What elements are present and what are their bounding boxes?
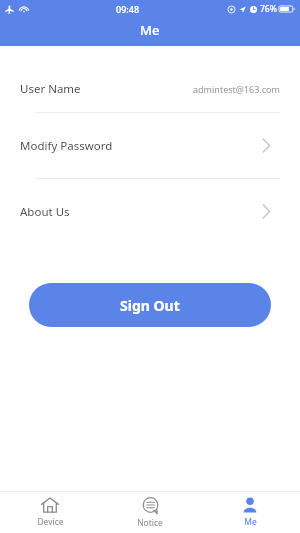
button[interactable]: Sign Out xyxy=(29,283,271,327)
staticText: Notice xyxy=(137,517,163,529)
staticText: Device xyxy=(37,516,64,528)
staticText: User Name xyxy=(20,81,81,97)
button[interactable]: Notice xyxy=(100,497,200,529)
button[interactable]: Me xyxy=(200,497,300,528)
staticText: Sign Out xyxy=(120,296,180,315)
button[interactable]: About Us xyxy=(0,179,300,244)
staticText: admintest@163.com xyxy=(193,83,280,95)
staticText: 09:48 xyxy=(116,3,140,15)
staticText: Modify Password xyxy=(20,138,113,154)
button[interactable]: Modify Password xyxy=(0,113,300,178)
staticText: Me xyxy=(140,21,160,39)
button[interactable]: Device xyxy=(0,497,100,528)
button[interactable]: User Name xyxy=(0,66,300,112)
staticText: About Us xyxy=(20,204,70,220)
staticText: 76% xyxy=(260,3,277,15)
staticText: Me xyxy=(244,516,257,528)
